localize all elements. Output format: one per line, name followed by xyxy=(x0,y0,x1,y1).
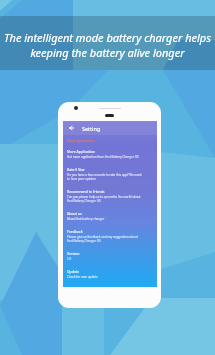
staticText: Rate 5 Star xyxy=(67,167,85,172)
staticText: Update xyxy=(67,269,80,274)
staticText: Check for new update xyxy=(67,275,98,279)
button[interactable]: More Application xyxy=(67,149,143,167)
staticText: About us xyxy=(67,211,82,216)
staticText: 1.0 xyxy=(67,257,72,261)
other: Back xyxy=(68,125,74,131)
staticText: Feedback xyxy=(67,229,83,234)
staticText: Setting xyxy=(82,125,101,132)
button[interactable]: Back xyxy=(63,121,157,135)
staticText: Do you have a few seconds to rate this a… xyxy=(67,173,143,181)
button[interactable]: Update xyxy=(67,269,143,287)
staticText: The intelligent mode battery charger hel… xyxy=(4,30,211,45)
staticText: Version xyxy=(67,251,80,256)
button[interactable]: About us xyxy=(67,211,143,229)
button[interactable]: Version xyxy=(67,251,143,269)
staticText: More Application xyxy=(67,149,95,154)
staticText: Please give us feedback and any suggesti… xyxy=(67,235,143,243)
button[interactable]: Rate 5 Star xyxy=(67,167,143,189)
staticText: About fast battery charger xyxy=(67,217,105,221)
button[interactable]: Recommend to friends xyxy=(67,189,143,211)
staticText: Recommend to friends xyxy=(67,189,105,194)
button[interactable]: Feedback xyxy=(67,229,143,251)
staticText: Can you please help us to spread to the … xyxy=(67,195,143,203)
staticText: keeping the battery alive longer xyxy=(30,45,185,60)
staticText: More Application xyxy=(67,138,95,143)
staticText: Get more application from Fast Battery C… xyxy=(67,155,139,159)
